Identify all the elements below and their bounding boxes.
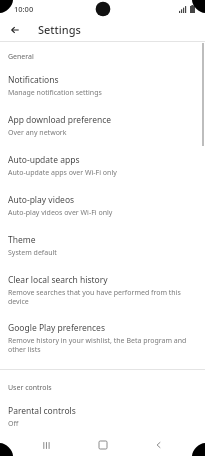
staticText: 10:00	[14, 4, 34, 14]
staticText: Theme	[8, 234, 36, 246]
staticText: Google Play preferences	[8, 322, 105, 334]
staticText: Clear local search history	[8, 274, 108, 286]
staticText: Auto-update apps over Wi-Fi only	[8, 168, 117, 178]
staticText: Remove history in your wishlist, the Bet…	[8, 336, 193, 354]
button[interactable]: Recent apps	[35, 434, 57, 456]
button[interactable]: Auto-update apps	[0, 148, 205, 184]
staticText: Over any network	[8, 128, 67, 138]
staticText: Auto-play videos	[8, 194, 75, 206]
staticText: Notifications	[8, 74, 59, 86]
button[interactable]: Back	[148, 434, 170, 456]
staticText: Off	[8, 419, 19, 428]
button[interactable]: Parental controls	[0, 399, 205, 434]
staticText: User controls	[8, 383, 52, 393]
button[interactable]: Back	[6, 21, 24, 39]
button[interactable]: Theme	[0, 228, 205, 264]
button[interactable]: Notifications	[0, 68, 205, 104]
staticText: Manage notification settings	[8, 88, 102, 98]
staticText: System default	[8, 248, 57, 258]
button[interactable]: App download preference	[0, 108, 205, 144]
staticText: Auto-update apps	[8, 154, 80, 166]
staticText: App download preference	[8, 114, 112, 126]
staticText: General	[8, 52, 34, 62]
button[interactable]: Google Play preferences	[0, 316, 205, 360]
staticText: Remove searches that you have performed …	[8, 288, 193, 306]
button[interactable]: Auto-play videos	[0, 188, 205, 224]
staticText: Settings	[38, 22, 81, 37]
staticText: Parental controls	[8, 405, 76, 417]
staticText: Auto-play videos over Wi-Fi only	[8, 208, 113, 218]
button[interactable]: Home	[92, 434, 114, 456]
button[interactable]: Clear local search history	[0, 268, 205, 312]
